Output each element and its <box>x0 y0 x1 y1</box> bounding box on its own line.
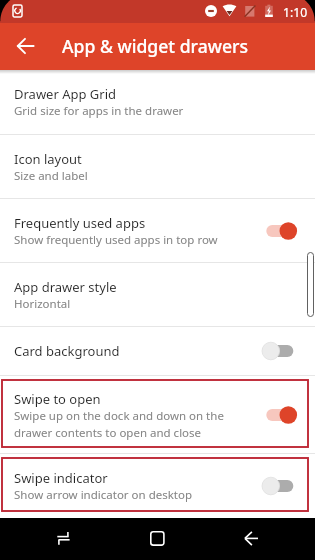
button[interactable]: Home <box>136 518 178 560</box>
staticText: Show frequently used apps in top row <box>14 232 218 248</box>
staticText: Grid size for apps in the drawer <box>14 103 184 119</box>
button[interactable]: Recent apps <box>42 518 84 560</box>
button[interactable]: Icon layout <box>0 135 315 198</box>
staticText: Drawer App Grid <box>14 85 117 103</box>
staticText: App & widget drawers <box>62 34 248 58</box>
staticText: Icon layout <box>14 150 82 168</box>
staticText: App drawer style <box>14 278 117 296</box>
button[interactable]: App drawer style <box>0 263 315 326</box>
button[interactable]: Toggle on <box>262 221 297 241</box>
button[interactable]: Card background <box>0 327 315 375</box>
button[interactable]: Toggle on <box>262 405 297 425</box>
staticText: Frequently used apps <box>14 214 146 232</box>
button[interactable]: Toggle off <box>262 476 297 496</box>
staticText: Show arrow indicator on desktop <box>14 487 193 503</box>
button[interactable]: Navigate up <box>7 28 43 64</box>
staticText: Swipe to open <box>14 390 101 408</box>
staticText: Card background <box>14 342 120 360</box>
staticText: Horizontal <box>14 296 71 312</box>
staticText: Swipe up on the dock and down on the dra… <box>14 408 224 440</box>
button[interactable]: Back <box>230 518 272 560</box>
button[interactable]: Toggle off <box>262 341 297 361</box>
staticText: Size and label <box>14 168 88 184</box>
button[interactable]: Drawer App Grid <box>0 70 315 134</box>
staticText: 1:10 <box>283 4 308 21</box>
staticText: Swipe indicator <box>14 469 108 487</box>
button[interactable]: Swipe indicator <box>0 454 315 518</box>
button[interactable]: Swipe to open <box>0 376 315 453</box>
button[interactable]: Frequently used apps <box>0 199 315 262</box>
